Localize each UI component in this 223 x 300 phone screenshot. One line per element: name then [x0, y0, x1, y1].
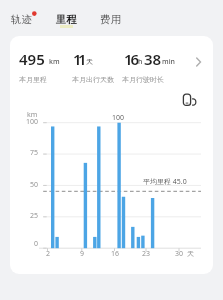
button[interactable]: 轨迹 — [6, 10, 40, 32]
staticText: km — [27, 110, 38, 120]
staticText: 费用 — [100, 13, 121, 26]
staticText: 里程 — [56, 13, 77, 26]
staticText: 2 — [46, 249, 51, 259]
staticText: 100 — [112, 113, 125, 123]
staticText: 25 — [30, 211, 39, 221]
staticText: 轨迹 — [11, 13, 32, 26]
staticText: 495 — [19, 49, 45, 69]
staticText: h — [138, 57, 143, 67]
staticText: 38 — [144, 49, 162, 69]
staticText: 30 — [175, 249, 184, 259]
staticText: 0 — [34, 239, 39, 249]
staticText: 本月行驶时长 — [122, 75, 164, 84]
staticText: 50 — [30, 180, 39, 190]
button[interactable]: 里程 — [52, 10, 82, 32]
staticText: 11 — [73, 49, 84, 69]
staticText: min — [162, 57, 175, 67]
staticText: 16 — [124, 49, 138, 69]
staticText: 天 — [187, 249, 194, 258]
button[interactable] — [180, 91, 200, 109]
button[interactable] — [120, 48, 210, 84]
staticText: 23 — [142, 249, 151, 259]
staticText: km — [49, 57, 60, 67]
staticText: 75 — [30, 148, 39, 158]
staticText: 16 — [111, 249, 120, 259]
staticText: 平均里程 45.0 — [143, 177, 187, 187]
staticText: 9 — [80, 249, 85, 259]
staticText: 天 — [86, 57, 93, 66]
button[interactable]: 费用 — [95, 10, 125, 32]
staticText: 本月里程 — [19, 75, 47, 84]
staticText: 100 — [26, 117, 39, 127]
staticText: 本月出行天数 — [72, 75, 114, 84]
